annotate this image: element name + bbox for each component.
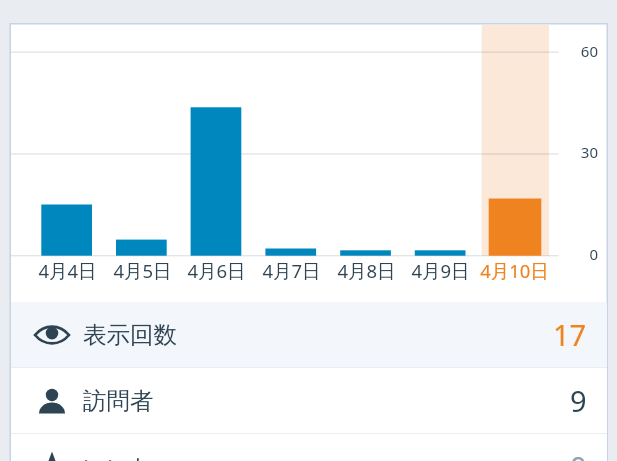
other: 表示回数 [33, 316, 71, 354]
other: いいね [33, 448, 71, 461]
staticText: 9 [570, 381, 587, 420]
staticText: 4月5日 [113, 258, 172, 282]
staticText: 4月6日 [187, 258, 246, 282]
staticText: 60 [580, 41, 598, 61]
staticText: 0 [589, 244, 598, 264]
staticText: 4月8日 [337, 258, 396, 282]
button[interactable]: 訪問者 [11, 368, 607, 433]
staticText: 4月7日 [262, 258, 321, 282]
staticText: 4月9日 [411, 258, 470, 282]
staticText: 4月4日 [38, 258, 97, 282]
staticText: 訪問者 [83, 386, 154, 416]
staticText: 4月10日 [480, 258, 549, 282]
staticText: 表示回数 [83, 320, 177, 350]
other: 訪問者 [33, 382, 71, 420]
staticText: いいね [83, 452, 156, 461]
staticText: 17 [553, 315, 587, 354]
button[interactable]: いいね [11, 434, 607, 461]
staticText: 0 [570, 447, 587, 461]
button[interactable]: 表示回数 [11, 302, 607, 367]
staticText: 30 [580, 142, 598, 162]
